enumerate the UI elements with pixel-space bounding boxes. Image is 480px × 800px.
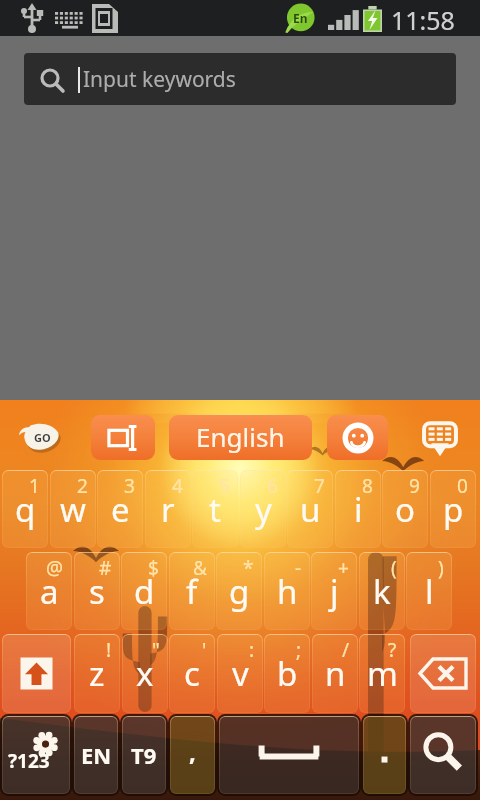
staticText: p — [443, 487, 464, 532]
staticText: * — [243, 555, 254, 581]
button[interactable]: Emoji — [327, 415, 388, 460]
staticText: i — [354, 487, 363, 532]
staticText: 5 — [219, 473, 230, 499]
button[interactable]: * — [216, 552, 262, 630]
button[interactable]: 5 — [192, 470, 238, 548]
staticText: 1 — [29, 473, 40, 499]
staticText: h — [277, 569, 298, 614]
button[interactable]: ' — [169, 634, 215, 713]
staticText: 2 — [77, 473, 88, 499]
button[interactable]: EN — [74, 716, 118, 794]
staticText: EN — [81, 740, 112, 770]
button[interactable]: GO Keyboard menu — [18, 421, 61, 452]
staticText: En — [293, 10, 308, 26]
button[interactable]: # — [74, 552, 120, 630]
button[interactable]: Search — [410, 716, 476, 794]
button[interactable]: 4 — [145, 470, 191, 548]
staticText: $ — [148, 555, 159, 581]
button[interactable]: 1 — [2, 470, 48, 548]
button[interactable]: , — [170, 716, 215, 794]
button[interactable]: 2 — [50, 470, 96, 548]
button[interactable]: Symbols and settings — [2, 716, 70, 794]
staticText: m — [367, 651, 398, 696]
button[interactable]: ; — [264, 634, 310, 713]
staticText: 11:58 — [391, 3, 455, 37]
staticText: @ — [46, 555, 64, 581]
button[interactable]: Backspace — [410, 634, 476, 713]
button[interactable]: Input keywords — [24, 53, 456, 105]
staticText: # — [99, 555, 112, 581]
button[interactable]: Shift — [2, 634, 71, 713]
staticText: 9 — [409, 473, 420, 499]
staticText: 7 — [314, 473, 325, 499]
staticText: r — [161, 487, 175, 532]
staticText: Input keywords — [83, 65, 236, 94]
staticText: 0 — [457, 473, 468, 499]
staticText: n — [325, 651, 346, 696]
staticText: ' — [202, 637, 207, 663]
staticText: j — [330, 569, 339, 614]
staticText: e — [111, 487, 130, 532]
staticText: ! — [106, 637, 112, 663]
button[interactable]: T9 — [122, 716, 166, 794]
staticText: , — [189, 735, 196, 768]
button[interactable]: & — [169, 552, 215, 630]
staticText: z — [89, 651, 105, 696]
staticText: 4 — [172, 473, 183, 499]
staticText: s — [89, 569, 105, 614]
button[interactable]: " — [122, 634, 168, 713]
staticText: 3 — [124, 473, 135, 499]
staticText: t — [209, 487, 221, 532]
button[interactable]: Space — [219, 716, 359, 794]
staticText: English — [196, 419, 285, 454]
button[interactable]: 0 — [430, 470, 476, 548]
button[interactable]: ) — [406, 552, 452, 630]
staticText: f — [186, 569, 198, 614]
button[interactable]: / — [312, 634, 358, 713]
staticText: - — [295, 555, 302, 581]
staticText: l — [425, 569, 434, 614]
staticText: ( — [391, 555, 397, 581]
staticText: w — [60, 487, 86, 532]
staticText: + — [338, 555, 349, 581]
staticText: 6 — [267, 473, 278, 499]
staticText: GO — [34, 430, 51, 445]
button[interactable]: Keyboard layout — [91, 415, 155, 460]
staticText: & — [193, 555, 207, 581]
button[interactable]: + — [311, 552, 357, 630]
staticText: y — [255, 487, 272, 532]
staticText: a — [40, 569, 59, 614]
staticText: g — [229, 569, 250, 614]
staticText: " — [152, 637, 160, 663]
button[interactable]: 6 — [240, 470, 286, 548]
staticText: ) — [438, 555, 444, 581]
button[interactable] — [363, 716, 406, 794]
button[interactable]: ? — [359, 634, 405, 713]
staticText: 8 — [362, 473, 373, 499]
button[interactable]: ( — [359, 552, 405, 630]
staticText: T9 — [131, 740, 157, 770]
staticText: x — [136, 651, 154, 696]
button[interactable]: ! — [74, 634, 120, 713]
staticText: k — [373, 569, 391, 614]
button[interactable]: 9 — [382, 470, 428, 548]
staticText: : — [249, 637, 255, 663]
staticText: ?123 — [8, 748, 50, 774]
button[interactable]: Hide keyboard — [421, 421, 459, 457]
staticText: ; — [296, 637, 302, 663]
button[interactable]: - — [264, 552, 310, 630]
button[interactable]: @ — [26, 552, 72, 630]
staticText: q — [15, 487, 36, 532]
staticText: d — [134, 569, 155, 614]
staticText: v — [232, 651, 249, 696]
staticText: u — [300, 487, 321, 532]
button[interactable]: : — [217, 634, 263, 713]
button[interactable]: 3 — [97, 470, 143, 548]
button[interactable]: English — [169, 415, 312, 460]
button[interactable]: $ — [121, 552, 167, 630]
button[interactable]: 7 — [287, 470, 333, 548]
staticText: / — [342, 637, 350, 663]
staticText: b — [277, 651, 298, 696]
button[interactable]: 8 — [335, 470, 381, 548]
staticText: c — [184, 651, 200, 696]
